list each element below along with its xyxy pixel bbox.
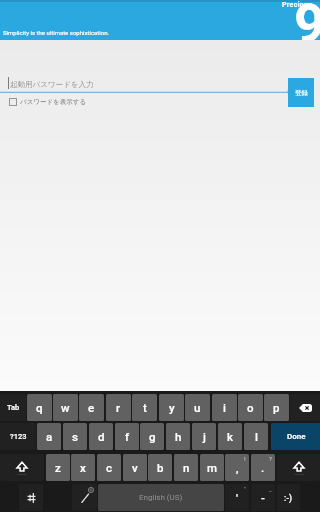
staticText: a [46, 430, 53, 443]
button[interactable]: d [89, 423, 113, 450]
staticText: i [223, 401, 226, 414]
staticText: q [36, 401, 43, 414]
staticText: / [82, 491, 87, 504]
button[interactable]: e [79, 394, 104, 421]
staticText: l [255, 430, 258, 443]
staticText: h [175, 430, 182, 443]
button[interactable]: Backspace [290, 394, 320, 421]
staticText: r [116, 401, 121, 414]
button[interactable]: ! [225, 454, 249, 481]
button[interactable]: k [218, 423, 242, 450]
button[interactable]: :-) [277, 484, 300, 511]
button[interactable]: y [159, 394, 184, 421]
staticText: - [261, 491, 265, 504]
button[interactable]: t [132, 394, 157, 421]
staticText: x [80, 461, 86, 474]
button[interactable]: q [27, 394, 52, 421]
button[interactable]: Tab [0, 394, 26, 421]
staticText: ?123 [10, 432, 27, 441]
button[interactable]: パスワードを表示する [9, 98, 87, 106]
button[interactable]: z [46, 454, 70, 481]
button[interactable]: w [53, 394, 78, 421]
staticText: t [143, 401, 147, 414]
button[interactable]: Done [271, 423, 320, 450]
staticText: " [244, 485, 246, 492]
staticText: y [169, 401, 175, 414]
staticText: ' [236, 491, 238, 504]
staticText: 登録 [295, 89, 308, 97]
staticText: Done [287, 432, 306, 441]
button[interactable]: v [123, 454, 147, 481]
staticText: :-) [284, 493, 293, 503]
button[interactable]: _ [251, 484, 275, 511]
staticText: m [207, 461, 218, 474]
button[interactable]: b [148, 454, 172, 481]
button[interactable]: l [244, 423, 268, 450]
staticText: パスワードを表示する [20, 98, 87, 106]
staticText: Tab [7, 403, 20, 412]
button[interactable]: / [72, 484, 97, 511]
button[interactable]: ? [251, 454, 275, 481]
staticText: c [106, 461, 113, 474]
button[interactable]: p [264, 394, 289, 421]
staticText: 起動用パスワードを入力 [10, 80, 94, 89]
staticText: g [149, 430, 156, 443]
staticText: f [125, 430, 130, 443]
button[interactable]: English (US) [98, 484, 224, 511]
button[interactable]: r [106, 394, 131, 421]
staticText: e [88, 401, 95, 414]
button[interactable]: Shift [0, 454, 44, 481]
button[interactable]: s [63, 423, 87, 450]
button[interactable]: n [174, 454, 198, 481]
staticText: v [132, 461, 138, 474]
button[interactable]: Shift [277, 454, 320, 481]
staticText: b [157, 461, 164, 474]
staticText: k [227, 430, 234, 443]
staticText: English (US) [139, 493, 183, 502]
staticText: w [61, 401, 70, 414]
staticText: ! [244, 455, 246, 462]
staticText: u [194, 401, 201, 414]
button[interactable]: g [140, 423, 164, 450]
button[interactable]: u [185, 394, 210, 421]
button[interactable]: Change input method [19, 484, 43, 511]
button[interactable]: " [225, 484, 249, 511]
button[interactable]: o [238, 394, 263, 421]
button[interactable]: j [192, 423, 216, 450]
staticText: o [247, 401, 254, 414]
staticText: n [183, 461, 190, 474]
staticText: _ [269, 485, 272, 492]
staticText: Precious [282, 1, 313, 9]
staticText: . [261, 461, 265, 474]
button[interactable]: f [115, 423, 139, 450]
staticText: d [98, 430, 105, 443]
button[interactable]: a [37, 423, 61, 450]
button[interactable]: x [71, 454, 95, 481]
staticText: 9 [294, 0, 320, 40]
staticText: j [203, 430, 206, 443]
staticText: s [72, 430, 78, 443]
staticText: , [236, 461, 239, 474]
button[interactable]: i [212, 394, 237, 421]
staticText: p [273, 401, 280, 414]
button[interactable]: c [97, 454, 121, 481]
staticText: z [55, 461, 61, 474]
button[interactable]: h [166, 423, 190, 450]
button[interactable]: ?123 [0, 423, 36, 450]
staticText: ? [269, 455, 272, 462]
staticText: Simplicity is the ultimate sophisticatio… [3, 29, 110, 36]
button[interactable]: m [200, 454, 224, 481]
button[interactable]: 登録 [288, 78, 314, 107]
